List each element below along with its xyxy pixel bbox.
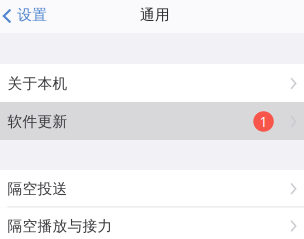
staticText: 设置 — [17, 5, 47, 24]
staticText: 关于本机 — [7, 74, 67, 93]
staticText: 隔空播放与接力 — [7, 217, 112, 235]
staticText: 软件更新 — [7, 112, 67, 131]
staticText: 1 — [260, 112, 268, 131]
button[interactable]: 软件更新 — [0, 102, 304, 140]
button[interactable]: 隔空投送 — [0, 170, 304, 206]
button[interactable]: 隔空播放与接力 — [0, 207, 304, 239]
staticText: 隔空投送 — [7, 179, 67, 198]
staticText: 通用 — [140, 5, 170, 24]
button[interactable]: 设置 — [0, 0, 55, 33]
button[interactable]: 关于本机 — [0, 64, 304, 102]
